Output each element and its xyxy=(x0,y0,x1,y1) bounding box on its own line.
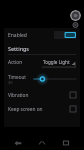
staticText: Keep screen on xyxy=(8,106,43,113)
button[interactable]: Enabled xyxy=(4,28,80,42)
button[interactable] xyxy=(34,73,76,85)
staticText: Action xyxy=(8,59,23,66)
button[interactable]: Back xyxy=(12,137,24,149)
staticText: Vibration xyxy=(8,92,29,99)
button[interactable]: Home xyxy=(36,137,48,149)
button[interactable]: Timeout xyxy=(4,70,80,88)
staticText: Settings xyxy=(8,45,29,52)
button[interactable] xyxy=(54,31,76,39)
button[interactable]: Recent apps xyxy=(60,137,72,149)
button[interactable]: Toggle Light xyxy=(42,57,76,68)
button[interactable]: Vibration xyxy=(4,88,80,102)
button[interactable]: Settings xyxy=(70,10,81,21)
button[interactable]: More options xyxy=(71,22,80,28)
staticText: 30 xyxy=(8,80,13,85)
staticText: Toggle Light xyxy=(43,59,70,65)
button[interactable]: Keep screen on xyxy=(4,102,80,116)
staticText: Timeout xyxy=(8,74,26,80)
staticText: Enabled xyxy=(8,32,27,39)
button[interactable]: Action xyxy=(4,55,80,70)
